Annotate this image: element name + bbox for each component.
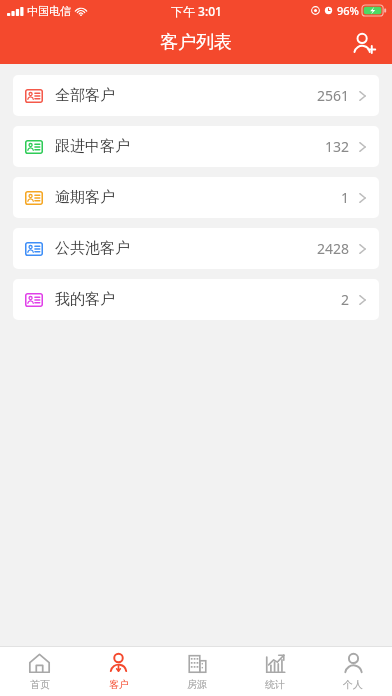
button[interactable]: 房源 bbox=[158, 647, 236, 696]
staticText: 全部客户 bbox=[55, 86, 115, 105]
staticText: 首页 bbox=[30, 678, 50, 691]
staticText: 房源 bbox=[187, 678, 207, 691]
button[interactable]: 统计 bbox=[236, 647, 314, 696]
staticText: 公共池客户 bbox=[55, 239, 130, 258]
staticText: 96% bbox=[337, 3, 359, 18]
staticText: 客户列表 bbox=[160, 31, 232, 54]
staticText: 个人 bbox=[343, 678, 363, 691]
button[interactable]: 跟进中客户 bbox=[13, 126, 379, 167]
staticText: 2 bbox=[341, 290, 350, 309]
staticText: 我的客户 bbox=[55, 290, 115, 309]
staticText: 2428 bbox=[317, 239, 350, 258]
staticText: 逾期客户 bbox=[55, 188, 115, 207]
button[interactable]: 首页 bbox=[0, 647, 79, 696]
staticText: 跟进中客户 bbox=[55, 137, 130, 156]
button[interactable]: 客户 bbox=[79, 647, 158, 696]
staticText: 统计 bbox=[265, 678, 285, 691]
button[interactable]: 个人 bbox=[314, 647, 392, 696]
staticText: 下午 3:01 bbox=[171, 3, 222, 19]
staticText: 客户 bbox=[109, 678, 129, 691]
staticText: 1 bbox=[341, 188, 350, 207]
button[interactable]: 逾期客户 bbox=[13, 177, 379, 218]
button[interactable]: 我的客户 bbox=[13, 279, 379, 320]
staticText: 中国电信 bbox=[27, 4, 71, 18]
staticText: 2561 bbox=[317, 86, 350, 105]
staticText: 132 bbox=[325, 137, 350, 156]
button[interactable]: Add customer bbox=[344, 24, 382, 62]
button[interactable]: 公共池客户 bbox=[13, 228, 379, 269]
button[interactable]: 全部客户 bbox=[13, 75, 379, 116]
